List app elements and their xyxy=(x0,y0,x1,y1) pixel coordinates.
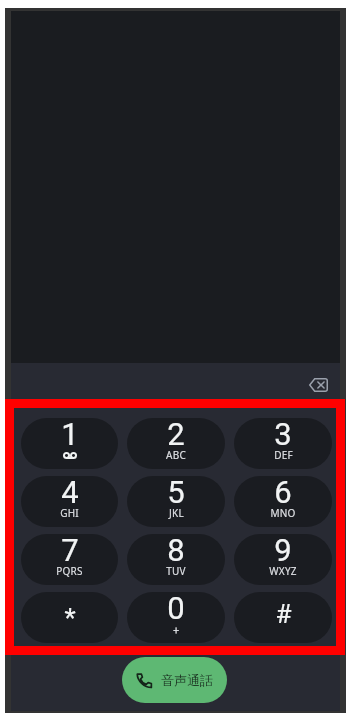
button[interactable]: 3 xyxy=(234,418,332,469)
button[interactable]: 1 xyxy=(21,418,118,469)
button[interactable]: 6 xyxy=(234,476,332,527)
staticText: * xyxy=(64,603,76,633)
staticText: 2 xyxy=(167,418,185,452)
staticText: MNO xyxy=(270,506,296,520)
button[interactable]: 2 xyxy=(127,418,225,469)
staticText: 4 xyxy=(61,476,79,510)
staticText: 0 xyxy=(167,592,185,626)
button[interactable]: # xyxy=(234,592,332,643)
staticText: 1 xyxy=(61,418,79,452)
staticText: + xyxy=(173,624,180,637)
staticText: DEF xyxy=(274,448,293,462)
button[interactable]: * xyxy=(21,592,118,643)
button[interactable]: 音声通話 xyxy=(122,657,227,703)
staticText: JKL xyxy=(169,506,184,520)
staticText: 5 xyxy=(167,476,185,510)
staticText: 9 xyxy=(274,534,292,568)
staticText: 8 xyxy=(167,534,185,568)
staticText: TUV xyxy=(166,564,186,578)
staticText: GHI xyxy=(60,506,79,520)
button[interactable]: Backspace xyxy=(298,364,339,405)
staticText: # xyxy=(275,599,292,629)
button[interactable]: 4 xyxy=(21,476,118,527)
staticText: 3 xyxy=(274,418,292,452)
button[interactable]: 9 xyxy=(234,534,332,585)
staticText: 音声通話 xyxy=(161,672,213,688)
button[interactable]: 0 xyxy=(127,592,225,643)
staticText: PQRS xyxy=(56,564,83,578)
staticText: ABC xyxy=(166,448,186,462)
button[interactable]: 5 xyxy=(127,476,225,527)
button[interactable]: 7 xyxy=(21,534,118,585)
button[interactable]: 8 xyxy=(127,534,225,585)
staticText: WXYZ xyxy=(269,564,297,578)
staticText: 6 xyxy=(274,476,292,510)
staticText: 7 xyxy=(61,534,79,568)
